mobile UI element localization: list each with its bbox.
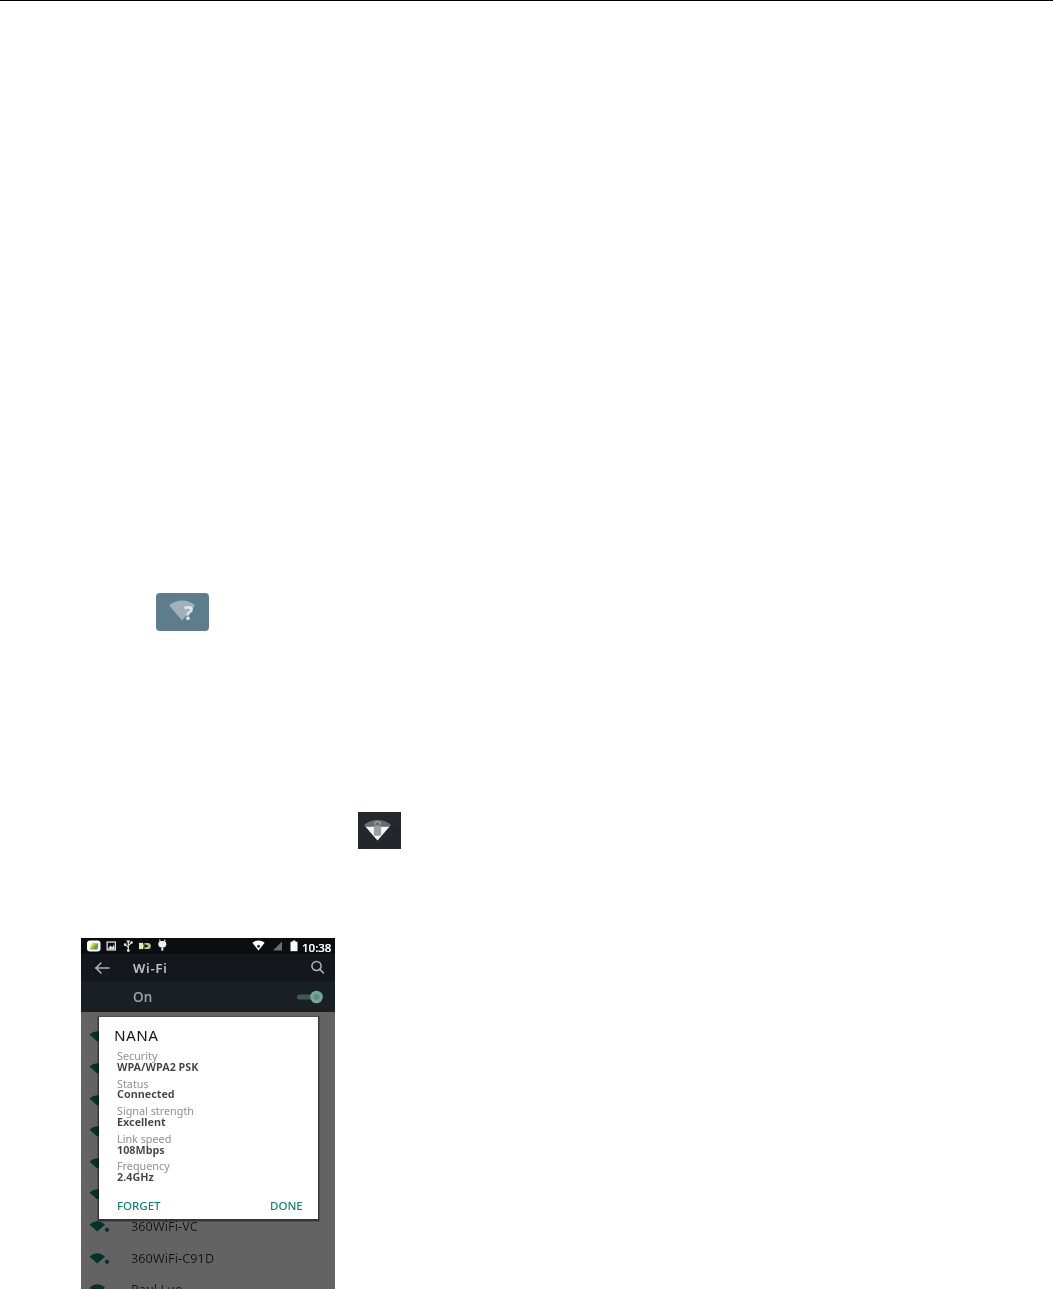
staticText: NANA xyxy=(131,1028,167,1045)
staticText: Status xyxy=(117,1076,149,1091)
button[interactable]: Tenda_8EA410 xyxy=(81,1147,335,1179)
staticText: TP-LINK_3F2A xyxy=(131,1092,214,1109)
button[interactable]: Wi-Fi secured xyxy=(358,812,401,849)
button[interactable]: Search xyxy=(309,959,327,977)
staticText: Paul Luo xyxy=(131,1281,183,1289)
staticText: ? xyxy=(184,600,194,626)
button[interactable]: TP-LINK_3F2A xyxy=(81,1084,335,1116)
staticText: MERCURY_5G xyxy=(131,1186,213,1203)
button[interactable]: 360WiFi-C91D xyxy=(81,1242,335,1274)
staticText: Link speed xyxy=(117,1131,172,1146)
staticText: HUAWEI-P9 xyxy=(131,1123,200,1140)
staticText: On xyxy=(133,988,153,1006)
staticText: 360WiFi-C91D xyxy=(131,1250,215,1267)
staticText: Frequency xyxy=(117,1158,170,1173)
button[interactable]: HUAWEI-P9 xyxy=(81,1115,335,1147)
staticText: Excellent xyxy=(117,1114,166,1129)
button[interactable]: FORGET xyxy=(117,1198,161,1214)
staticText: 2.4GHz xyxy=(117,1169,154,1184)
button[interactable]: ChinaNet-Yvn9 xyxy=(81,1052,335,1084)
button[interactable]: MERCURY_5G xyxy=(81,1178,335,1210)
staticText: WPA/WPA2 PSK xyxy=(117,1059,199,1074)
staticText: 360WiFi-VC xyxy=(131,1218,198,1235)
button[interactable]: Back xyxy=(93,959,111,977)
button[interactable]: Paul Luo xyxy=(81,1273,335,1289)
staticText: Connected xyxy=(117,1086,175,1101)
button[interactable]: Wi-Fi unknown xyxy=(156,593,209,631)
button[interactable]: DONE xyxy=(270,1198,303,1214)
staticText: Tenda_8EA410 xyxy=(131,1155,218,1172)
button[interactable]: 360WiFi-VC xyxy=(81,1210,335,1242)
staticText: Wi-Fi xyxy=(133,959,168,977)
staticText: FORGET xyxy=(117,1198,161,1214)
staticText: 108Mbps xyxy=(117,1142,165,1157)
staticText: NANA xyxy=(114,1025,159,1045)
staticText: Signal strength xyxy=(117,1103,194,1118)
staticText: ChinaNet-Yvn9 xyxy=(131,1060,220,1077)
staticText: 10:38 xyxy=(302,940,332,956)
button[interactable]: NANA xyxy=(81,1020,335,1052)
staticText: DONE xyxy=(270,1198,303,1214)
button[interactable]: Wi-Fi toggle xyxy=(296,990,323,1004)
staticText: Security xyxy=(117,1048,158,1063)
